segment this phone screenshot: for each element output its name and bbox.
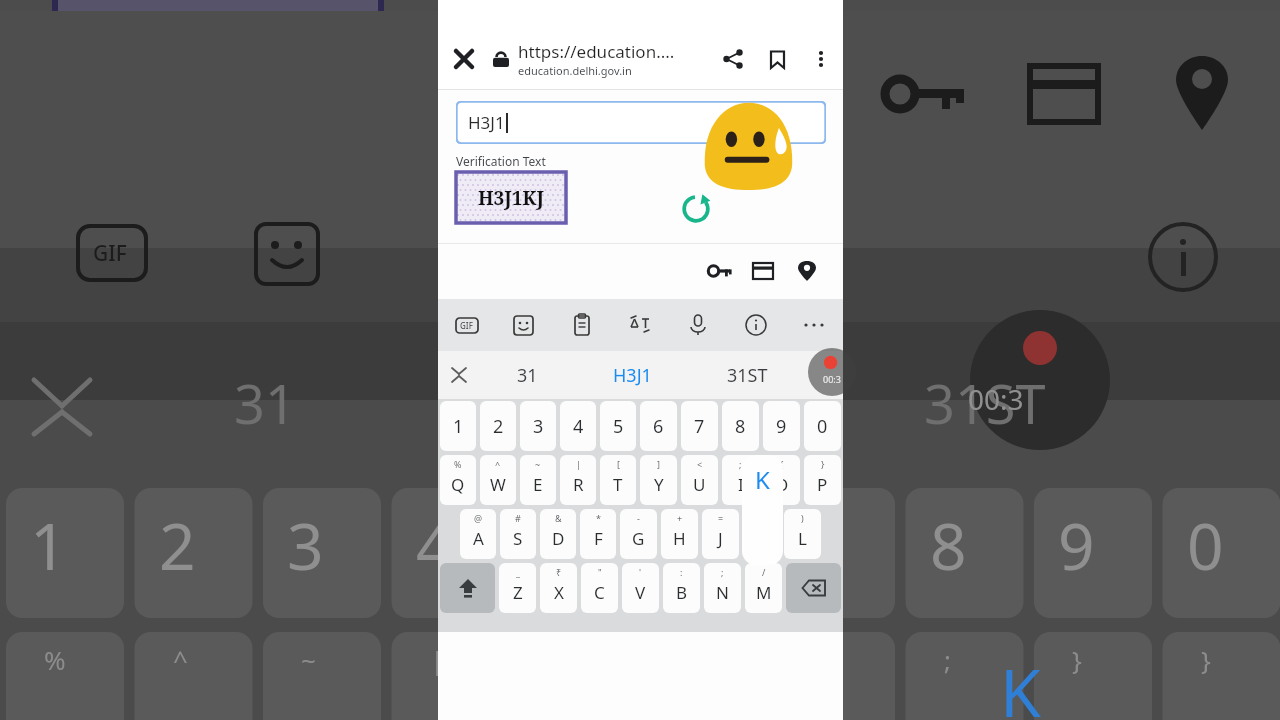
staticText: ]: [657, 458, 660, 470]
button[interactable]: Shift: [440, 563, 495, 613]
button[interactable]: =: [702, 509, 739, 559]
button[interactable]: Payment methods: [741, 249, 785, 293]
button[interactable]: ': [622, 563, 659, 613]
button[interactable]: Info: [727, 299, 785, 351]
button[interactable]: +: [661, 509, 698, 559]
staticText: &: [555, 512, 562, 524]
staticText: C: [594, 581, 605, 604]
button[interactable]: }: [804, 455, 841, 505]
button[interactable]: 3: [520, 401, 556, 451]
staticText: 8: [930, 502, 967, 589]
button[interactable]: <: [681, 455, 718, 505]
button[interactable]: ₹: [540, 563, 577, 613]
button[interactable]: Recording timer: [808, 348, 856, 396]
button[interactable]: Translate: [611, 299, 669, 351]
staticText: Q: [451, 473, 465, 496]
staticText: H: [673, 527, 686, 550]
staticText: @: [474, 512, 483, 524]
button[interactable]: Share: [711, 37, 755, 81]
button[interactable]: ^: [480, 455, 516, 505]
staticText: 8: [735, 414, 746, 439]
button[interactable]: 2: [480, 401, 516, 451]
button[interactable]: Refresh captcha: [680, 193, 712, 225]
staticText: https://education....: [518, 40, 675, 63]
button[interactable]: |: [560, 455, 596, 505]
button[interactable]: Passwords: [697, 249, 741, 293]
staticText: 31: [234, 366, 296, 440]
staticText: *: [596, 512, 601, 524]
button[interactable]: {: [763, 455, 800, 505]
button[interactable]: Addresses: [785, 249, 829, 293]
button[interactable]: 9: [763, 401, 800, 451]
button[interactable]: ): [784, 509, 821, 559]
button[interactable]: More: [785, 299, 843, 351]
button[interactable]: ;: [704, 563, 741, 613]
button[interactable]: Backspace: [786, 563, 841, 613]
staticText: W: [490, 473, 506, 496]
staticText: <: [697, 458, 703, 470]
staticText: G: [632, 527, 645, 550]
staticText: ~: [535, 458, 541, 470]
button[interactable]: Sticker: [495, 299, 553, 351]
staticText: 31ST: [727, 363, 768, 388]
button[interactable]: 31ST: [690, 351, 805, 399]
button[interactable]: _: [499, 563, 536, 613]
staticText: L: [798, 527, 807, 550]
button[interactable]: -: [620, 509, 657, 559]
staticText: 5: [544, 502, 581, 589]
staticText: 1: [30, 502, 67, 589]
staticText: 2: [493, 414, 504, 439]
button[interactable]: ]: [640, 455, 677, 505]
button[interactable]: 6: [640, 401, 677, 451]
staticText: =: [718, 512, 724, 524]
button[interactable]: H3J1: [575, 351, 690, 399]
staticText: N: [716, 581, 729, 604]
button[interactable]: :: [663, 563, 700, 613]
button[interactable]: 5: [600, 401, 636, 451]
button[interactable]: ~: [520, 455, 556, 505]
staticText: 00:3: [968, 380, 1024, 418]
button[interactable]: Voice input: [669, 299, 727, 351]
button[interactable]: #: [500, 509, 536, 559]
staticText: ^: [495, 458, 501, 470]
button[interactable]: /: [745, 563, 782, 613]
button[interactable]: H3J1: [456, 101, 826, 144]
staticText: 2: [159, 502, 196, 589]
staticText: 6: [673, 502, 710, 589]
staticText: I: [738, 473, 744, 496]
staticText: R: [573, 473, 584, 496]
button[interactable]: Clipboard: [553, 299, 611, 351]
button[interactable]: Close: [438, 33, 490, 85]
button[interactable]: More options: [799, 37, 843, 81]
staticText: ': [639, 566, 642, 578]
button[interactable]: 4: [560, 401, 596, 451]
staticText: education.delhi.gov.in: [518, 63, 632, 78]
button[interactable]: 31: [480, 351, 575, 399]
button[interactable]: *: [580, 509, 616, 559]
button[interactable]: 1: [440, 401, 476, 451]
staticText: 1: [453, 414, 464, 439]
button[interactable]: [: [600, 455, 636, 505]
staticText: 7: [801, 502, 838, 589]
button[interactable]: 0: [804, 401, 841, 451]
button[interactable]: GIF: [438, 299, 495, 351]
button[interactable]: 7: [681, 401, 718, 451]
staticText: 6: [653, 414, 664, 439]
staticText: {: [780, 458, 784, 470]
staticText: 0: [1187, 502, 1224, 589]
staticText: ₹: [556, 566, 562, 578]
button[interactable]: ": [581, 563, 618, 613]
button[interactable]: Bookmark: [755, 37, 799, 81]
staticText: X: [554, 581, 564, 604]
button[interactable]: &: [540, 509, 576, 559]
button[interactable]: 8: [722, 401, 759, 451]
button[interactable]: %: [440, 455, 476, 505]
button[interactable]: @: [460, 509, 496, 559]
button[interactable]: Expand suggestions: [438, 351, 480, 399]
button[interactable]: ;: [722, 455, 759, 505]
staticText: V: [635, 581, 646, 604]
staticText: D: [552, 527, 565, 550]
staticText: B: [676, 581, 688, 604]
